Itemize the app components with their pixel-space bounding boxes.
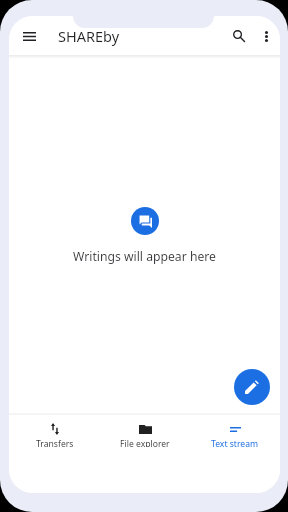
staticText: Text stream: [211, 438, 259, 447]
button[interactable]: Text stream: [190, 415, 280, 447]
staticText: SHAREby: [58, 26, 120, 46]
staticText: File explorer: [120, 438, 170, 447]
button[interactable]: Transfers: [9, 415, 100, 447]
button[interactable]: Search: [225, 22, 253, 50]
button[interactable]: More options: [252, 22, 280, 50]
staticText: Transfers: [36, 438, 74, 447]
button[interactable]: Open navigation menu: [15, 22, 43, 50]
button[interactable]: New writing: [234, 369, 270, 405]
button[interactable]: File explorer: [100, 415, 190, 447]
staticText: Writings will appear here: [73, 248, 216, 265]
